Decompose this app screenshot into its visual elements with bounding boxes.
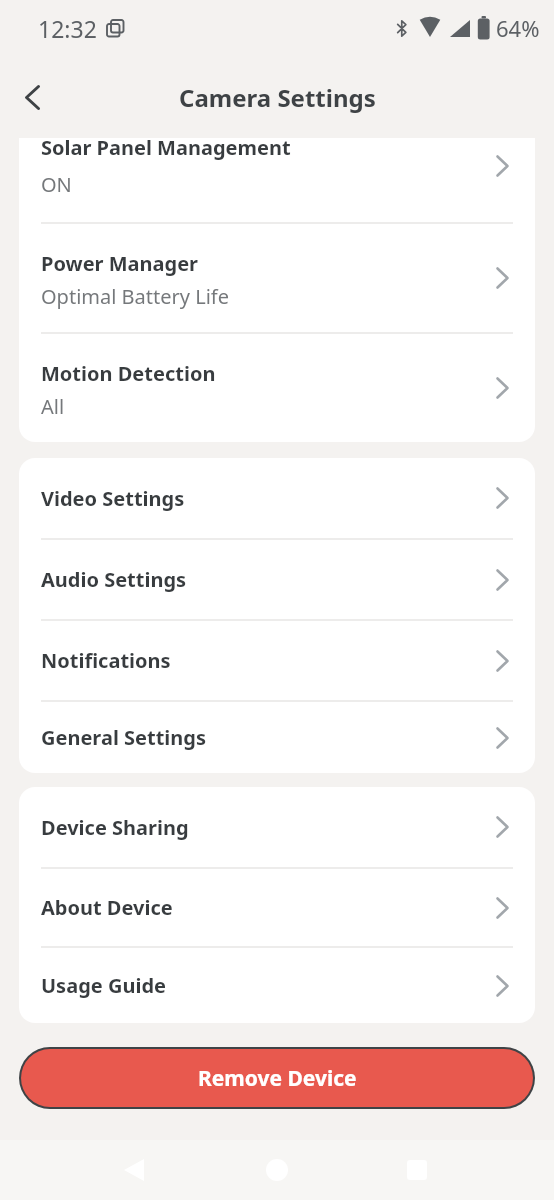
button[interactable]: [114, 1150, 154, 1190]
button[interactable]: Notifications: [19, 621, 535, 700]
button[interactable]: Power Manager: [19, 224, 535, 332]
staticText: ON: [41, 171, 72, 198]
button[interactable]: Usage Guide: [19, 948, 535, 1023]
button[interactable]: General Settings: [19, 702, 535, 773]
button[interactable]: Device Sharing: [19, 787, 535, 867]
button[interactable]: [397, 1150, 437, 1190]
button[interactable]: [12, 77, 52, 117]
staticText: Remove Device: [198, 1064, 357, 1093]
staticText: Notifications: [41, 647, 171, 674]
staticText: Motion Detection: [41, 360, 216, 387]
button[interactable]: [257, 1150, 297, 1190]
button[interactable]: Remove Device: [21, 1049, 533, 1107]
staticText: Audio Settings: [41, 566, 187, 593]
button[interactable]: About Device: [19, 869, 535, 946]
button[interactable]: Motion Detection: [19, 334, 535, 442]
staticText: 64%: [496, 13, 540, 43]
staticText: About Device: [41, 894, 173, 921]
staticText: General Settings: [41, 724, 207, 751]
button[interactable]: Video Settings: [19, 458, 535, 538]
staticText: Device Sharing: [41, 814, 189, 841]
button[interactable]: Solar Panel Management: [19, 138, 535, 222]
staticText: Power Manager: [41, 250, 199, 277]
staticText: All: [41, 393, 65, 420]
staticText: 12:32: [38, 13, 97, 44]
staticText: Solar Panel Management: [41, 138, 291, 161]
staticText: Optimal Battery Life: [41, 283, 229, 310]
staticText: Usage Guide: [41, 972, 166, 999]
staticText: Video Settings: [41, 485, 185, 512]
button[interactable]: Audio Settings: [19, 540, 535, 619]
staticText: Camera Settings: [179, 81, 376, 114]
